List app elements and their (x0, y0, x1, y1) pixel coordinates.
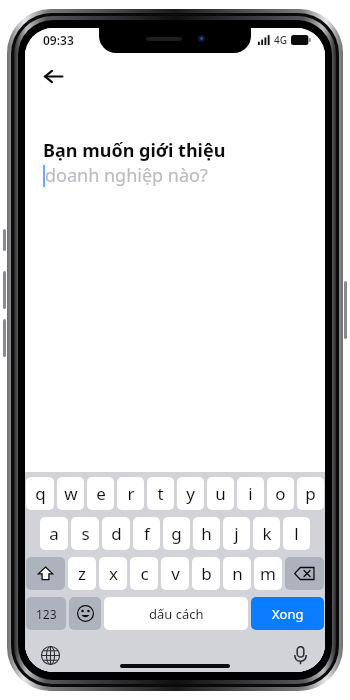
button[interactable]: e (87, 477, 114, 510)
button[interactable]: dấu cách (104, 597, 248, 630)
button[interactable]: b (192, 557, 220, 590)
button[interactable]: o (267, 477, 294, 510)
staticText: 4G (274, 33, 287, 47)
staticText: j (234, 522, 239, 545)
staticText: l (294, 522, 299, 545)
staticText: g (171, 522, 182, 545)
button[interactable]: Emoji (69, 597, 101, 630)
button[interactable]: i (237, 477, 264, 510)
staticText: r (127, 482, 135, 505)
button[interactable]: w (57, 477, 84, 510)
button[interactable]: k (253, 517, 280, 550)
button[interactable]: c (130, 557, 158, 590)
button[interactable]: u (207, 477, 234, 510)
button[interactable]: Backspace (285, 557, 324, 590)
button[interactable]: Change keyboard language (35, 640, 65, 670)
button[interactable]: q (26, 477, 54, 510)
staticText: doanh nghiệp nào? (45, 163, 208, 188)
staticText: Xong (272, 605, 304, 623)
staticText: d (111, 522, 122, 545)
button[interactable]: h (193, 517, 220, 550)
staticText: b (201, 562, 212, 585)
button[interactable]: l (283, 517, 310, 550)
button[interactable]: Voice input (285, 640, 315, 670)
button[interactable]: Xong (251, 597, 324, 630)
button[interactable]: 123 (26, 597, 66, 630)
staticText: t (157, 482, 164, 505)
button[interactable]: r (117, 477, 144, 510)
button[interactable]: t (147, 477, 174, 510)
staticText: q (35, 482, 46, 505)
button[interactable]: a (40, 517, 68, 550)
staticText: y (186, 482, 195, 505)
staticText: a (49, 522, 59, 545)
staticText: v (171, 562, 180, 585)
staticText: k (262, 522, 272, 545)
button[interactable]: d (102, 517, 130, 550)
staticText: m (260, 562, 276, 585)
staticText: e (96, 482, 106, 505)
button[interactable]: y (177, 477, 204, 510)
button[interactable]: x (99, 557, 127, 590)
button[interactable]: p (297, 477, 324, 510)
staticText: z (78, 562, 86, 585)
staticText: s (81, 522, 90, 545)
staticText: f (144, 522, 150, 545)
button[interactable]: Shift (26, 557, 65, 590)
button[interactable]: v (161, 557, 189, 590)
button[interactable]: m (254, 557, 282, 590)
button[interactable]: Back (33, 56, 73, 96)
staticText: 09:33 (43, 32, 74, 48)
staticText: n (232, 562, 243, 585)
button[interactable]: j (223, 517, 250, 550)
staticText: Bạn muốn giới thiệu (43, 138, 226, 163)
button[interactable]: f (133, 517, 160, 550)
button[interactable]: s (71, 517, 99, 550)
staticText: u (215, 482, 226, 505)
staticText: 123 (36, 606, 57, 622)
staticText: o (275, 482, 286, 505)
staticText: dấu cách (149, 605, 204, 623)
button[interactable]: g (163, 517, 190, 550)
button[interactable]: n (223, 557, 251, 590)
staticText: c (140, 562, 149, 585)
staticText: p (305, 482, 316, 505)
staticText: i (248, 482, 253, 505)
staticText: w (64, 482, 78, 505)
staticText: h (201, 522, 212, 545)
button[interactable]: z (68, 557, 96, 590)
staticText: x (109, 562, 118, 585)
